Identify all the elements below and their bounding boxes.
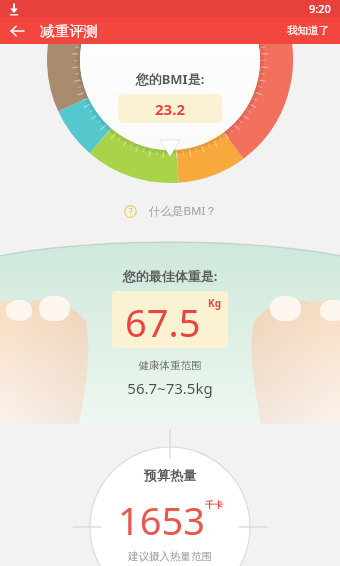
staticText: 减重评测: [40, 22, 98, 40]
button[interactable]: 我知道了: [276, 19, 340, 42]
staticText: 千卡: [205, 499, 223, 510]
staticText: ?: [129, 206, 133, 217]
staticText: 预算热量: [0, 467, 340, 483]
staticText: 67.5: [125, 296, 201, 348]
staticText: 什么是BMI？: [149, 203, 217, 219]
staticText: 1653: [118, 494, 205, 546]
button[interactable]: ?: [118, 199, 223, 223]
staticText: 您的最佳体重是:: [0, 267, 340, 285]
staticText: 您的BMI是:: [0, 70, 340, 88]
staticText: 健康体重范围: [0, 359, 340, 372]
staticText: 56.7~73.5kg: [0, 378, 340, 398]
staticText: 我知道了: [287, 24, 329, 37]
staticText: 9:20: [309, 1, 331, 16]
staticText: 建议摄入热量范围: [0, 550, 340, 563]
staticText: Kg: [208, 296, 221, 310]
staticText: 23.2: [155, 99, 185, 119]
button[interactable]: Back: [0, 17, 34, 44]
